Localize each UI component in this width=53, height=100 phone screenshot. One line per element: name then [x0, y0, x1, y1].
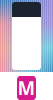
staticText: M	[17, 76, 35, 100]
